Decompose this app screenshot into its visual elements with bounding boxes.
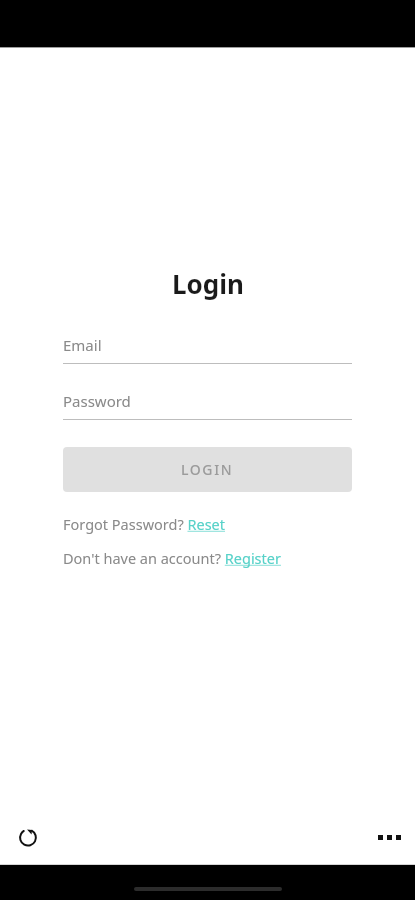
staticText: Password (63, 391, 131, 411)
button[interactable]: LOGIN (63, 447, 352, 492)
button[interactable]: Password (63, 391, 352, 420)
staticText: LOGIN (181, 460, 234, 479)
button[interactable]: Email (63, 335, 352, 364)
staticText: Forgot Password? Reset (63, 514, 226, 534)
staticText: Email (63, 335, 102, 355)
button[interactable]: Forgot Password? Reset (63, 514, 226, 534)
button[interactable]: Reload (10, 819, 46, 855)
button[interactable]: More options (371, 819, 407, 855)
button[interactable]: Don't have an account? Register (63, 548, 281, 568)
staticText: Don't have an account? Register (63, 548, 281, 568)
staticText: Login (172, 266, 244, 301)
